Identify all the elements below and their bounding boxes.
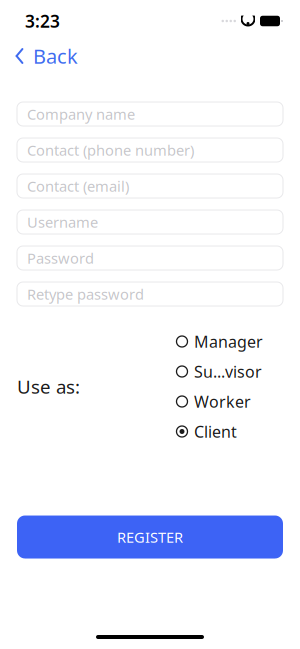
button[interactable]: Su...visor [176,364,300,379]
button[interactable]: Client [176,424,300,439]
button[interactable]: Password [17,246,283,270]
staticText: Su...visor [194,361,262,382]
button[interactable]: Manager [176,334,300,349]
staticText: Username [27,212,98,232]
button[interactable]: Retype password [17,282,283,306]
button[interactable]: REGISTER [17,515,283,558]
staticText: Worker [194,391,251,412]
button[interactable]: Contact (phone number) [17,138,283,162]
staticText: Password [27,248,94,268]
staticText: Use as: [17,374,80,399]
staticText: REGISTER [117,527,183,547]
staticText: 3:23 [25,9,60,32]
button[interactable]: Contact (email) [17,174,283,198]
button[interactable]: Username [17,210,283,234]
staticText: Contact (phone number) [27,140,194,160]
button[interactable]: Back [0,37,78,75]
staticText: Retype password [27,284,144,304]
button[interactable]: Worker [176,394,300,409]
staticText: Company name [27,104,135,124]
staticText: Manager [194,331,263,352]
staticText: Contact (email) [27,176,129,196]
button[interactable]: Company name [17,102,283,126]
staticText: Client [194,421,237,442]
staticText: Back [33,43,78,69]
